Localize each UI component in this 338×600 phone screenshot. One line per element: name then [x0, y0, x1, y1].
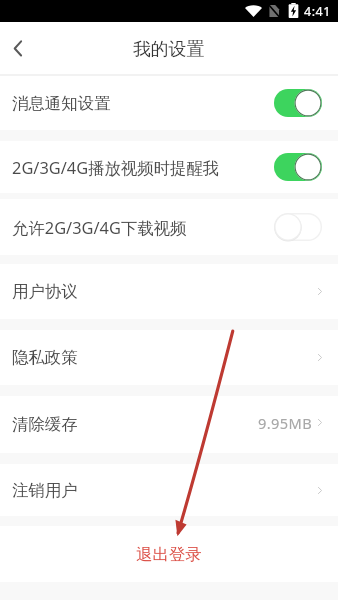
button[interactable]: 退出登录 — [0, 526, 338, 582]
button[interactable]: Back — [2, 22, 38, 76]
button[interactable]: 2G/3G/4G播放视频时提醒我 — [0, 141, 338, 193]
button[interactable]: 注销用户 — [0, 464, 338, 516]
staticText: 4:41 — [304, 3, 331, 20]
staticText: 隐私政策 — [12, 347, 78, 368]
staticText: 退出登录 — [136, 544, 202, 565]
staticText: 9.95MB — [258, 413, 313, 433]
staticText: 用户协议 — [12, 281, 78, 302]
button[interactable]: 用户协议 — [0, 264, 338, 319]
staticText: 注销用户 — [12, 480, 78, 501]
button[interactable]: 允许2G/3G/4G下载视频 — [0, 199, 338, 255]
button[interactable]: 清除缓存 — [0, 396, 338, 453]
staticText: 2G/3G/4G播放视频时提醒我 — [12, 156, 220, 178]
button[interactable]: 隐私政策 — [0, 330, 338, 385]
staticText: 消息通知设置 — [12, 93, 111, 114]
staticText: 我的设置 — [133, 38, 205, 60]
staticText: 清除缓存 — [12, 414, 78, 435]
staticText: 允许2G/3G/4G下载视频 — [12, 216, 187, 238]
button[interactable]: 消息通知设置 — [0, 76, 338, 130]
